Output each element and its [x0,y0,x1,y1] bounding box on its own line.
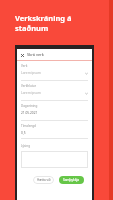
staticText: 21.05.2021 [21,111,38,115]
staticText: Skrá verk [27,52,44,57]
staticText: Lýsing [21,144,31,148]
staticText: Dagsetning [21,104,38,108]
staticText: staðnum [15,23,49,33]
staticText: Tímalengd [21,124,36,128]
staticText: Verk [21,64,28,68]
button[interactable]: Verkhlutur [21,81,88,101]
button[interactable] [21,151,88,168]
button[interactable]: Tímalengd [21,121,88,139]
button[interactable]: Verk [21,61,88,81]
staticText: Samþykkja [63,178,80,182]
staticText: Lorem ipsum [21,71,41,75]
staticText: 0,5 [21,131,26,135]
button[interactable]: Samþykkja [59,176,84,184]
staticText: Verkhlutur [21,84,36,88]
staticText: Verkskráning á [15,13,72,23]
staticText: Lorem ipsum [21,91,41,95]
button[interactable]: Hætta við [33,176,54,184]
button[interactable]: Loka [19,52,25,58]
staticText: Hætta við [37,178,51,182]
button[interactable]: Dagsetning [21,101,88,121]
